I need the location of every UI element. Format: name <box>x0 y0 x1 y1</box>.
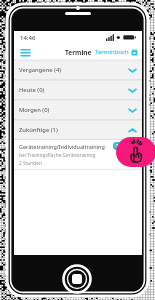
staticText: Zukünftige (1) <box>19 126 58 134</box>
staticText: 09:00 <box>125 153 136 159</box>
button[interactable]: Zukünftige (1) <box>14 120 142 140</box>
staticText: Morgen (0) <box>19 106 50 114</box>
staticText: Terminbuch <box>95 48 129 56</box>
staticText: 14:46 <box>20 34 36 42</box>
staticText: bei Trainingsfläche Gerätetraining <box>19 152 96 159</box>
staticText: Gerätetraining/Individualtraining <box>19 143 105 150</box>
staticText: TUE 09.05 <box>116 143 136 149</box>
button[interactable]: Menü <box>18 45 32 59</box>
button[interactable]: Morgen (0) <box>14 100 142 120</box>
button[interactable]: Terminbuch <box>95 48 138 56</box>
button[interactable]: Gerätetraining/Individualtraining <box>14 140 142 170</box>
staticText: Termine <box>65 48 92 57</box>
staticText: 2 Stunden <box>19 160 42 167</box>
staticText: Heute (0) <box>19 86 45 94</box>
button[interactable]: Vergangene (4) <box>14 60 142 80</box>
button[interactable]: Heute (0) <box>14 80 142 100</box>
staticText: Vergangene (4) <box>19 66 62 74</box>
button[interactable]: Tippen <box>116 137 155 167</box>
